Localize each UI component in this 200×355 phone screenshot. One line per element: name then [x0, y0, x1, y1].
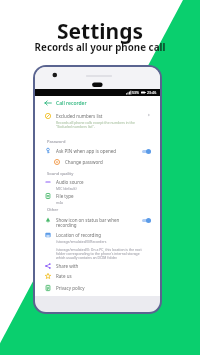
button[interactable]: File type: [35, 193, 160, 205]
staticText: Records all your phone call: [0, 41, 200, 54]
staticText: Settings: [0, 17, 200, 46]
staticText: MIC (default): [56, 186, 77, 191]
button[interactable]: Rate us: [35, 273, 160, 279]
button[interactable]: Back: [44, 99, 52, 107]
staticText: Records all phone calls except the numbe…: [56, 120, 135, 129]
staticText: 23:46: [147, 90, 157, 95]
staticText: Location of recording: [56, 232, 102, 238]
button[interactable]: Audio source: [35, 179, 160, 191]
staticText: Excluded numbers list: [56, 113, 103, 119]
staticText: File type: [56, 193, 74, 199]
button[interactable]: Change password: [35, 159, 160, 165]
staticText: Rate us: [56, 273, 72, 279]
button[interactable]: Ask PIN when app is opened: [35, 148, 160, 154]
staticText: /storage/emulated/0/Recorders /storage/e…: [56, 239, 142, 260]
button[interactable]: Show icon on status bar when recording: [35, 217, 160, 228]
staticText: Call recorder: [56, 100, 87, 107]
staticText: Sound quality: [47, 171, 74, 176]
staticText: Audio source: [56, 179, 84, 185]
staticText: Change password: [65, 159, 103, 165]
button[interactable]: Excluded numbers list: [35, 113, 160, 129]
button[interactable]: Location of recording: [35, 232, 160, 260]
button[interactable]: Sound quality: [47, 171, 160, 176]
staticText: m4a: [56, 200, 64, 205]
button[interactable]: Other: [47, 207, 160, 212]
button[interactable]: Password: [47, 139, 160, 144]
staticText: Privacy policy: [56, 285, 85, 291]
staticText: Password: [47, 139, 66, 144]
button[interactable]: Privacy policy: [35, 285, 160, 291]
staticText: Other: [47, 207, 59, 212]
staticText: Ask PIN when app is opened: [56, 148, 117, 154]
staticText: 53%: [132, 90, 140, 95]
staticText: Show icon on status bar when recording: [56, 217, 120, 228]
button[interactable]: Share with: [35, 263, 160, 269]
staticText: Share with: [56, 263, 79, 269]
